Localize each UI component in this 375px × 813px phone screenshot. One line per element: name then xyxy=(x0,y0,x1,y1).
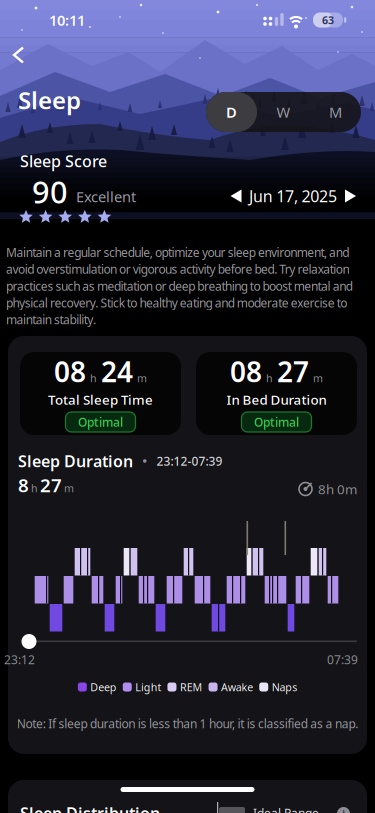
staticText: 24 xyxy=(101,353,133,390)
staticText: REM xyxy=(180,680,203,694)
staticText: In Bed Duration xyxy=(226,391,326,408)
staticText: 10:11 xyxy=(49,10,85,30)
staticText: 8h 0m xyxy=(318,480,357,498)
staticText: h xyxy=(266,371,273,385)
staticText: 8 xyxy=(18,473,29,497)
staticText: Sleep Score xyxy=(20,150,107,172)
staticText: 23:12 xyxy=(4,651,35,667)
staticText: Optimal xyxy=(78,414,123,430)
staticText: h xyxy=(90,371,97,385)
button[interactable]: D xyxy=(206,92,257,132)
staticText: Naps xyxy=(272,680,297,694)
staticText: Sleep Duration xyxy=(18,450,133,472)
staticText: Total Sleep Time xyxy=(48,391,153,408)
staticText: 90 xyxy=(32,171,68,212)
staticText: 08 xyxy=(230,353,262,390)
button[interactable]: Back xyxy=(7,41,35,69)
staticText: Ideal Range xyxy=(253,805,319,813)
staticText: 07:39 xyxy=(327,651,358,667)
staticText: Sleep xyxy=(18,84,81,116)
staticText: Sleep Distribution xyxy=(20,802,160,813)
button[interactable]: Previous day xyxy=(228,188,243,203)
button[interactable]: W xyxy=(258,92,308,132)
staticText: 23:12-07:39 xyxy=(156,453,222,469)
staticText: Excellent xyxy=(76,187,136,206)
staticText: h xyxy=(31,481,38,495)
button[interactable]: Next day xyxy=(343,188,358,203)
staticText: Light xyxy=(135,680,161,694)
button[interactable]: Ideal Range info xyxy=(334,804,352,813)
staticText: 08 xyxy=(54,353,86,390)
staticText: D xyxy=(226,102,237,122)
staticText: m xyxy=(137,371,147,385)
staticText: m xyxy=(313,371,323,385)
staticText: Jun 17, 2025 xyxy=(249,185,337,207)
staticText: Optimal xyxy=(254,414,299,430)
staticText: M xyxy=(329,102,342,122)
staticText: Awake xyxy=(221,680,253,694)
staticText: 63 xyxy=(322,13,334,27)
staticText: Deep xyxy=(90,680,117,694)
staticText: i xyxy=(342,808,344,813)
staticText: Note: If sleep duration is less than 1 h… xyxy=(17,715,358,731)
staticText: 27 xyxy=(277,353,309,390)
staticText: Maintain a regular schedule, optimize yo… xyxy=(6,244,353,328)
staticText: 27 xyxy=(40,473,62,497)
staticText: m xyxy=(64,481,74,495)
button[interactable]: M xyxy=(310,92,360,132)
staticText: W xyxy=(276,102,290,122)
